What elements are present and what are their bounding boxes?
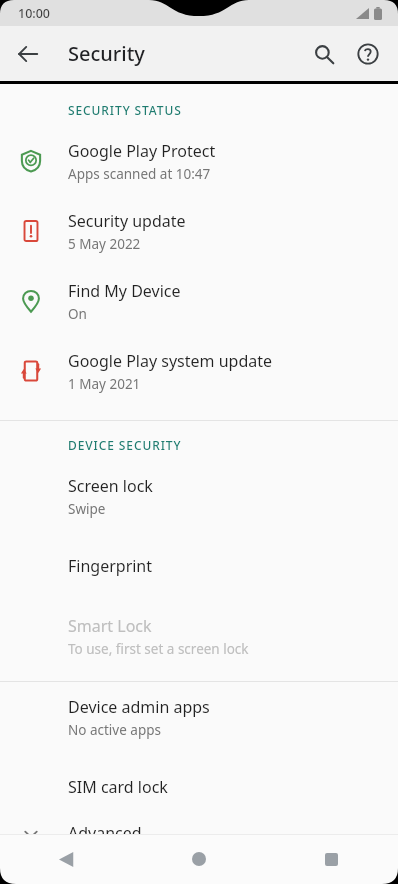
staticText: Google Play Protect [68, 140, 216, 162]
button[interactable]: Device admin apps [0, 682, 398, 752]
staticText: Google Play system update [68, 350, 273, 372]
staticText: 5 May 2022 [68, 235, 141, 253]
button[interactable]: Back [0, 834, 132, 884]
staticText: Advanced [68, 822, 142, 834]
button[interactable]: Advanced [0, 822, 398, 834]
button[interactable]: Security update [0, 196, 398, 266]
staticText: 10:00 [18, 5, 51, 22]
staticText: 1 May 2021 [68, 375, 141, 393]
button[interactable]: Back [6, 32, 50, 76]
button[interactable]: Fingerprint [0, 531, 398, 601]
staticText: Fingerprint [68, 555, 153, 577]
button[interactable]: Smart Lock [0, 601, 398, 671]
button[interactable]: Screen lock [0, 461, 398, 531]
button[interactable]: Home [132, 834, 265, 884]
staticText: Apps scanned at 10:47 [68, 165, 211, 183]
button[interactable]: SIM card lock [0, 752, 398, 822]
staticText: Security [68, 40, 145, 67]
staticText: On [68, 305, 87, 323]
button[interactable]: Help [346, 32, 390, 76]
button[interactable]: Google Play Protect [0, 126, 398, 196]
staticText: Find My Device [68, 280, 181, 302]
button[interactable]: Google Play system update [0, 336, 398, 406]
staticText: Screen lock [68, 475, 153, 497]
button[interactable]: Search [302, 32, 346, 76]
staticText: No active apps [68, 721, 161, 739]
button[interactable]: Find My Device [0, 266, 398, 336]
staticText: To use, first set a screen lock [68, 640, 249, 658]
staticText: Device admin apps [68, 696, 210, 718]
staticText: Smart Lock [68, 615, 152, 637]
button[interactable]: Recent apps [265, 834, 398, 884]
staticText: Security update [68, 210, 186, 232]
staticText: Swipe [68, 500, 106, 518]
staticText: SIM card lock [68, 776, 168, 798]
staticText: SECURITY STATUS [68, 102, 182, 118]
staticText: DEVICE SECURITY [68, 437, 182, 453]
